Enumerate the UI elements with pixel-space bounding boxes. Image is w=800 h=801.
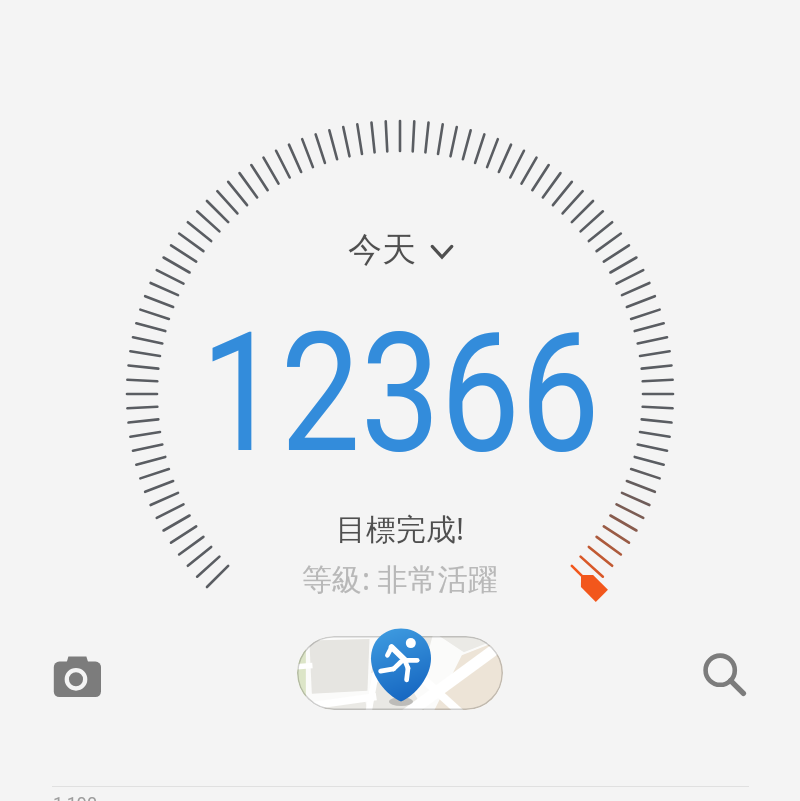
button[interactable]: 今天 bbox=[348, 228, 453, 271]
staticText: 目標完成! bbox=[336, 508, 465, 549]
staticText: 今天 bbox=[348, 228, 416, 271]
staticText: 1,190 bbox=[53, 793, 98, 801]
button[interactable]: Map route bbox=[297, 636, 503, 710]
button[interactable]: Search bbox=[690, 640, 760, 710]
staticText: 等級: 非常活躍 bbox=[302, 558, 498, 599]
button[interactable]: Camera bbox=[40, 645, 114, 709]
staticText: 12366 bbox=[201, 296, 600, 491]
